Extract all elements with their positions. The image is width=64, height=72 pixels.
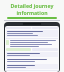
button[interactable] [6, 52, 58, 57]
button[interactable] [6, 64, 58, 69]
staticText: Detailed journey [0, 2, 64, 9]
button[interactable] [6, 48, 31, 51]
button[interactable] [6, 30, 58, 37]
button[interactable] [6, 40, 58, 47]
staticText: information [0, 9, 64, 16]
button[interactable] [6, 58, 58, 63]
